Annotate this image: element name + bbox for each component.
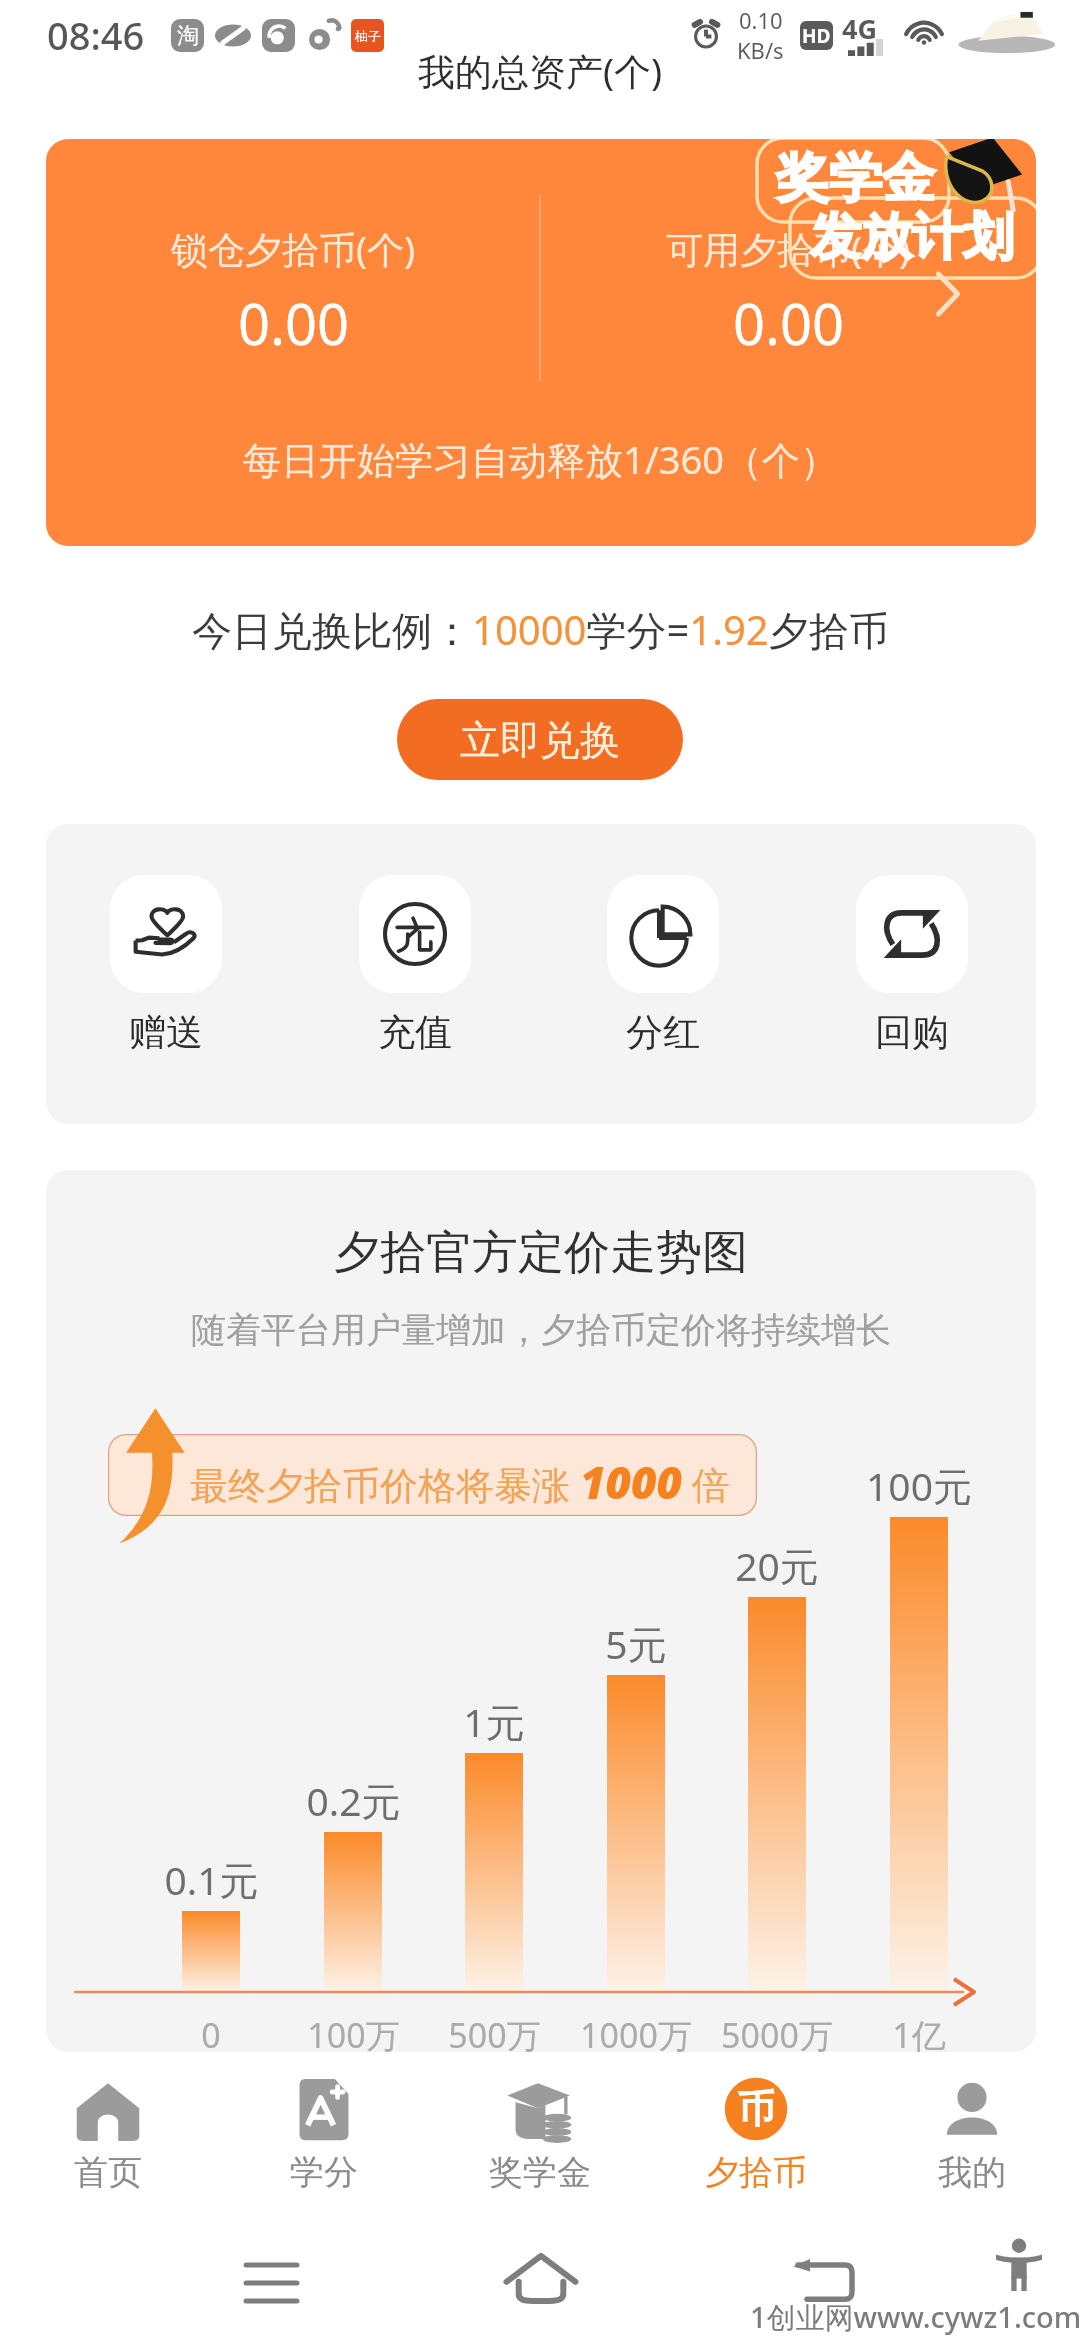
staticText: 0.1元 — [164, 1853, 259, 1906]
staticText: 1元 — [463, 1695, 525, 1748]
staticText: 柚子 — [355, 28, 381, 44]
button[interactable]: 充值 — [359, 875, 471, 1056]
staticText: 0 — [201, 2012, 221, 2052]
staticText: 奖学金 — [776, 145, 935, 212]
staticText: 500万 — [448, 2012, 541, 2052]
button[interactable]: 学分 — [216, 2052, 432, 2200]
staticText: 0.2元 — [306, 1774, 401, 1827]
button[interactable]: 赠送 — [110, 875, 222, 1056]
button[interactable]: 币 — [648, 2052, 864, 2200]
staticText: 5元 — [605, 1617, 667, 1670]
staticText: 4G — [842, 10, 877, 47]
staticText: 100元 — [866, 1459, 972, 1512]
button[interactable]: Back — [772, 2230, 872, 2330]
staticText: 5000万 — [721, 2012, 833, 2052]
staticText: 08:46 — [47, 9, 145, 61]
staticText: 最终夕拾币价格将暴涨 1000 倍 — [190, 1452, 730, 1512]
button[interactable]: 首页 — [0, 2052, 216, 2200]
staticText: 我的 — [938, 2151, 1006, 2194]
staticText: 夕拾币 — [705, 2151, 807, 2194]
button[interactable]: 回购 — [856, 875, 968, 1056]
staticText: 币 — [737, 2085, 775, 2133]
staticText: 充值 — [378, 1009, 452, 1056]
staticText: 发放计划 — [810, 205, 1014, 269]
staticText: 赠送 — [129, 1009, 203, 1056]
staticText: 1亿 — [892, 2012, 946, 2052]
staticText: 0.00 — [733, 285, 845, 361]
staticText: 学分 — [290, 2151, 358, 2194]
staticText: 我的总资产(个) — [418, 45, 663, 96]
staticText: 立即兑换 — [460, 715, 620, 765]
staticText: 分红 — [626, 1009, 700, 1056]
button[interactable]: Recents — [221, 2233, 321, 2333]
staticText: 1000万 — [580, 2012, 692, 2052]
button[interactable]: 奖学金 — [432, 2052, 648, 2200]
staticText: 100万 — [307, 2012, 400, 2052]
button[interactable]: 我的 — [864, 2052, 1080, 2200]
staticText: 今日兑换比例：10000学分=1.92夕拾币 — [192, 602, 889, 657]
staticText: 0.10 — [739, 5, 783, 35]
button[interactable]: 分红 — [607, 875, 719, 1056]
staticText: 1创业网www.cywz1.com — [750, 2297, 1080, 2337]
button[interactable]: Accessibility — [979, 2225, 1059, 2305]
staticText: 淘 — [177, 22, 199, 50]
staticText: 20元 — [735, 1539, 819, 1592]
staticText: 随着平台用户量增加，夕拾币定价将持续增长 — [191, 1308, 891, 1352]
button[interactable]: 立即兑换 — [397, 699, 683, 780]
staticText: 回购 — [875, 1009, 949, 1056]
staticText: HD — [802, 23, 831, 49]
staticText: 夕拾官方定价走势图 — [334, 1224, 748, 1282]
staticText: 首页 — [74, 2151, 142, 2194]
staticText: 锁仓夕拾币(个) — [171, 223, 416, 274]
button[interactable]: Home — [491, 2227, 591, 2327]
staticText: KB/s — [737, 35, 784, 65]
staticText: 奖学金 — [489, 2151, 591, 2194]
staticText: 每日开始学习自动释放1/360（个） — [243, 433, 839, 485]
staticText: 0.00 — [238, 285, 350, 361]
staticText: 可用夕拾币(个) — [666, 223, 911, 274]
